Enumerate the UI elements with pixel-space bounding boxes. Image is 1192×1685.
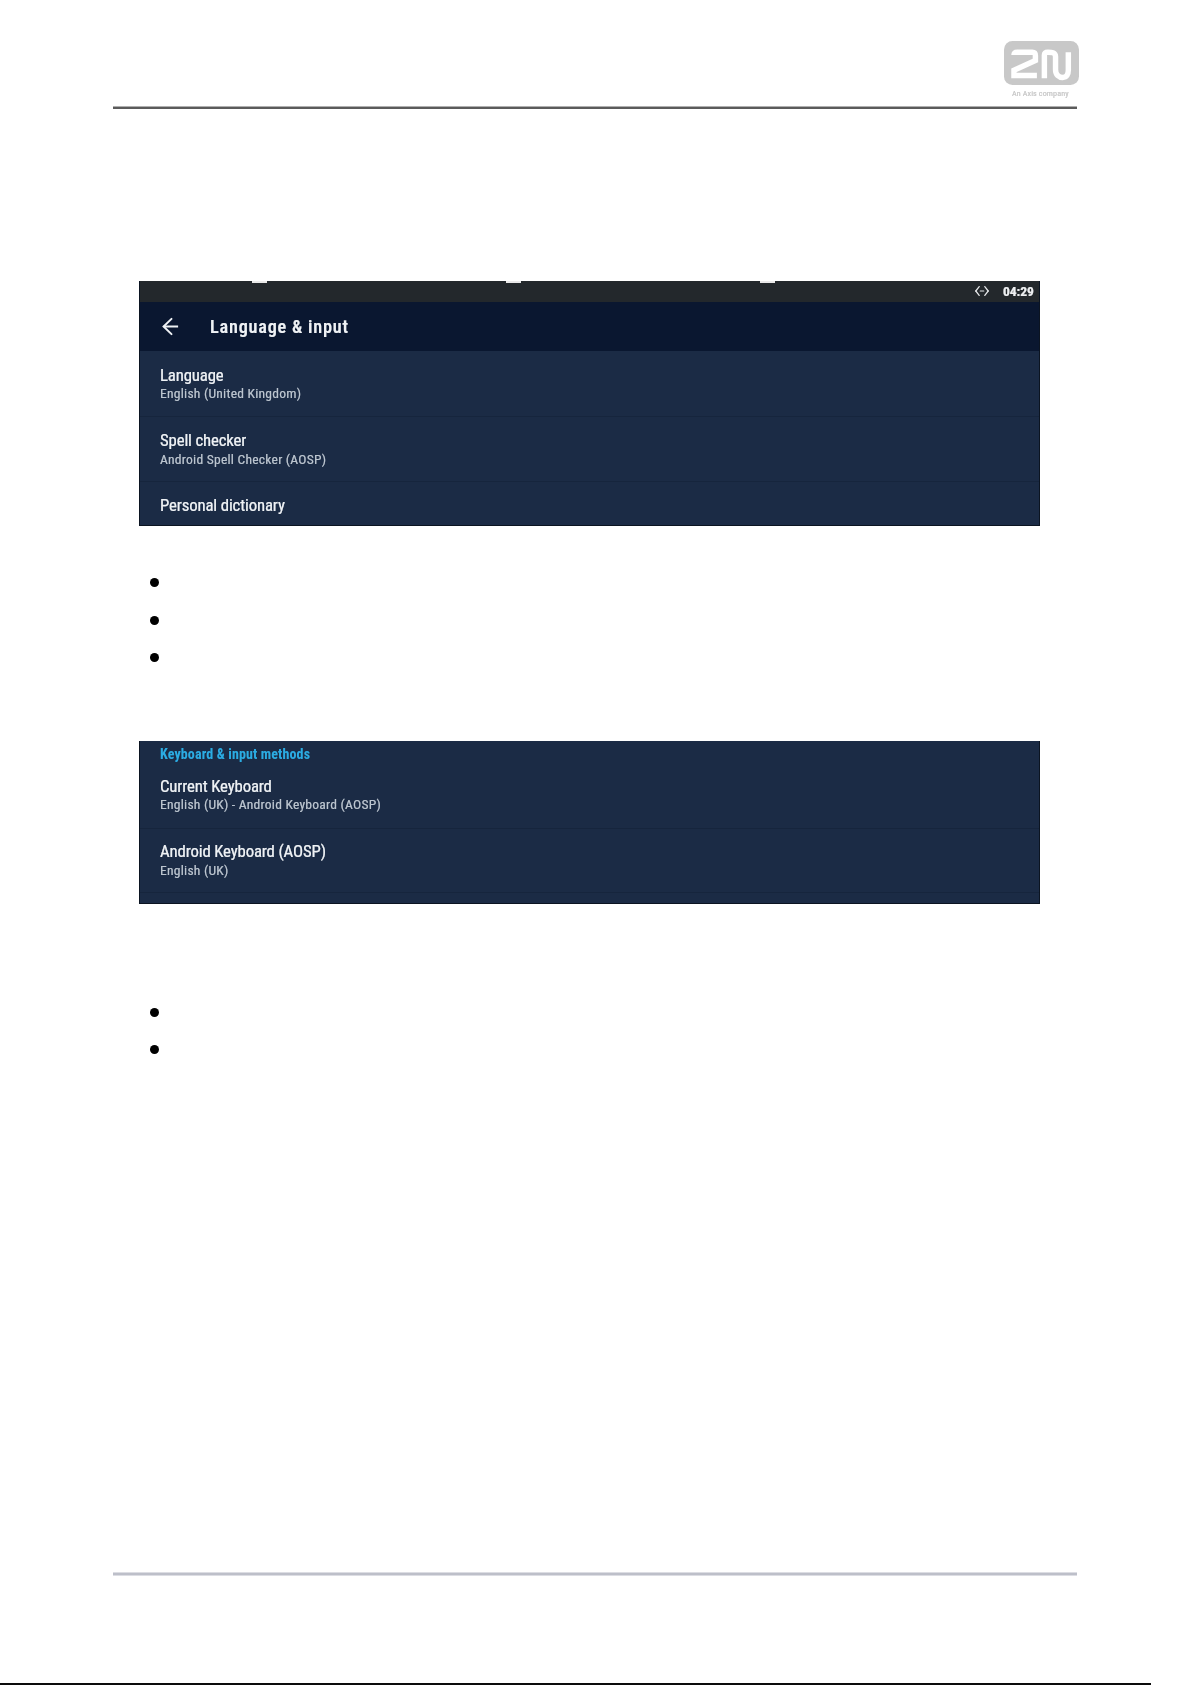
staticText: Personal dictionary <box>160 495 285 515</box>
staticText: Android Keyboard (AOSP) <box>160 841 326 861</box>
button[interactable]: Navigate up <box>157 312 186 341</box>
staticText: Language & input <box>210 316 349 337</box>
staticText: An Axis company <box>1012 88 1069 97</box>
other: Ethernet connected <box>975 286 989 296</box>
staticText: English (UK) <box>160 862 229 878</box>
staticText: English (United Kingdom) <box>160 385 302 401</box>
staticText: 04:29 <box>1003 283 1034 299</box>
staticText: Spell checker <box>160 430 247 450</box>
button[interactable] <box>139 481 1040 526</box>
button[interactable] <box>139 763 1040 828</box>
staticText: English (UK) - Android Keyboard (AOSP) <box>160 796 382 812</box>
staticText: Android Spell Checker (AOSP) <box>160 451 327 467</box>
staticText: Keyboard & input methods <box>160 746 311 762</box>
button[interactable] <box>139 416 1040 481</box>
staticText: Language <box>160 365 224 385</box>
staticText: Current Keyboard <box>160 776 272 796</box>
button[interactable] <box>139 351 1040 416</box>
button[interactable] <box>139 828 1040 893</box>
